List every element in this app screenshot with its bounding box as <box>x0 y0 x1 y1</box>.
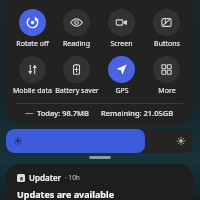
staticText: Updater <box>29 172 62 183</box>
button[interactable]: Screen Record <box>99 9 144 49</box>
staticText: Updates are available <box>17 188 115 200</box>
staticText: Mobile data <box>13 86 52 96</box>
button[interactable]: Reading mode <box>54 9 99 49</box>
button[interactable]: Battery saver <box>54 56 99 96</box>
staticText: Battery saver <box>55 86 99 96</box>
staticText: GPS <box>115 86 129 96</box>
staticText: Today: 98.7MB <box>37 108 89 118</box>
button[interactable]: Today: 98.7MB <box>6 108 193 118</box>
button[interactable]: Updater <box>6 164 193 200</box>
staticText: Screen Record <box>99 39 144 49</box>
button[interactable]: Buttons <box>144 9 189 49</box>
button[interactable]: GPS <box>99 56 144 96</box>
button[interactable]: Brightness <box>6 129 193 153</box>
staticText: Reading mode <box>54 39 99 49</box>
staticText: Rotate off <box>16 39 49 49</box>
button[interactable]: More <box>144 56 189 96</box>
staticText: More <box>158 86 176 96</box>
staticText: Buttons <box>154 39 180 49</box>
staticText: · 10h <box>65 173 80 182</box>
button[interactable]: Mobile data <box>10 56 54 96</box>
staticText: Remaining: 21.05GB <box>101 108 174 118</box>
button[interactable]: Expand <box>89 156 111 159</box>
button[interactable]: Rotate off <box>10 9 54 49</box>
